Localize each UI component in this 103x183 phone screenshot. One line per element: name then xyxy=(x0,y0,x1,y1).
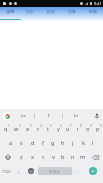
button[interactable]: i xyxy=(73,122,83,136)
button[interactable]: s xyxy=(16,136,27,150)
button[interactable]: Voice input xyxy=(90,109,103,122)
staticText: La xyxy=(21,113,26,119)
button[interactable]: Space xyxy=(38,167,72,175)
staticText: z xyxy=(20,153,23,161)
button[interactable]: y xyxy=(53,122,63,136)
button[interactable]: x xyxy=(27,150,38,164)
staticText: j xyxy=(72,139,74,147)
button[interactable]: j xyxy=(68,136,78,150)
staticText: 5 xyxy=(50,124,52,128)
staticText: f xyxy=(42,139,44,147)
staticText: a xyxy=(9,139,13,147)
staticText: w xyxy=(14,125,19,133)
button[interactable]: ?123 xyxy=(0,164,13,178)
button[interactable]: c xyxy=(38,150,48,164)
staticText: b xyxy=(61,153,65,161)
button[interactable]: Enter xyxy=(83,164,103,178)
staticText: q xyxy=(4,125,8,133)
button[interactable]: a xyxy=(5,136,16,150)
button[interactable]: La xyxy=(13,109,34,122)
button[interactable]: 好友 xyxy=(40,7,61,16)
button[interactable]: m xyxy=(78,150,88,164)
button[interactable]: In xyxy=(63,109,90,122)
button[interactable]: 同学 xyxy=(20,7,40,16)
staticText: 0 xyxy=(100,124,102,128)
staticText: 8 xyxy=(80,124,82,128)
staticText: 1 xyxy=(8,124,10,128)
button[interactable]: g xyxy=(48,136,58,150)
staticText: y xyxy=(57,125,60,133)
staticText: 2 xyxy=(19,124,21,128)
staticText: k xyxy=(82,139,85,147)
staticText: u xyxy=(66,125,70,133)
button[interactable]: 同事 xyxy=(61,7,82,16)
staticText: c xyxy=(42,153,45,161)
button[interactable]: e xyxy=(22,122,33,136)
button[interactable]: r xyxy=(33,122,43,136)
staticText: 4 xyxy=(40,124,42,128)
staticText: t xyxy=(47,125,50,133)
staticText: 9:41 xyxy=(94,1,102,6)
staticText: v xyxy=(52,153,55,161)
staticText: l xyxy=(92,139,94,147)
staticText: r xyxy=(37,125,40,133)
staticText: 群聊 xyxy=(89,9,97,14)
staticText: 同事 xyxy=(68,9,76,14)
button[interactable]: d xyxy=(27,136,38,150)
staticText: 中·英文 xyxy=(49,169,61,174)
button[interactable]: k xyxy=(78,136,88,150)
button[interactable]: t xyxy=(43,122,53,136)
button[interactable]: Emoji xyxy=(24,164,37,178)
button[interactable]: Shift xyxy=(0,150,16,164)
button[interactable]: I xyxy=(35,109,62,122)
staticText: g xyxy=(51,139,55,147)
button[interactable]: 全部 xyxy=(0,7,20,16)
staticText: e xyxy=(26,125,30,133)
button[interactable]: 群聊 xyxy=(82,7,103,16)
button[interactable]: h xyxy=(58,136,68,150)
staticText: ?123 xyxy=(2,169,11,174)
button[interactable]: v xyxy=(48,150,58,164)
staticText: 3 xyxy=(30,124,32,128)
button[interactable]: l xyxy=(88,136,98,150)
button[interactable]: Backspace xyxy=(88,150,103,164)
staticText: n xyxy=(71,153,75,161)
button[interactable]: n xyxy=(68,150,78,164)
button[interactable]: o xyxy=(83,122,93,136)
button[interactable]: . xyxy=(73,164,83,178)
staticText: In xyxy=(74,113,79,119)
button[interactable]: b xyxy=(58,150,68,164)
staticText: 6 xyxy=(60,124,62,128)
button[interactable]: q xyxy=(0,122,11,136)
staticText: h xyxy=(61,139,65,147)
staticText: 好友 xyxy=(47,9,55,14)
button[interactable]: z xyxy=(16,150,27,164)
button[interactable]: f xyxy=(38,136,48,150)
staticText: 7 xyxy=(70,124,72,128)
staticText: p xyxy=(96,125,100,133)
staticText: x xyxy=(31,153,34,161)
staticText: i xyxy=(77,125,79,133)
staticText: d xyxy=(31,139,35,147)
staticText: o xyxy=(86,125,90,133)
button[interactable]: p xyxy=(93,122,103,136)
staticText: 全部 xyxy=(6,9,15,14)
staticText: m xyxy=(80,153,86,161)
button[interactable]: u xyxy=(63,122,73,136)
staticText: s xyxy=(20,139,23,147)
button[interactable]: Google xyxy=(0,109,13,122)
button[interactable]: w xyxy=(11,122,22,136)
staticText: I xyxy=(48,113,50,119)
staticText: , xyxy=(18,167,20,175)
staticText: . xyxy=(77,167,79,175)
staticText: 同学 xyxy=(26,9,34,14)
button[interactable]: , xyxy=(13,164,24,178)
staticText: 9 xyxy=(90,124,92,128)
